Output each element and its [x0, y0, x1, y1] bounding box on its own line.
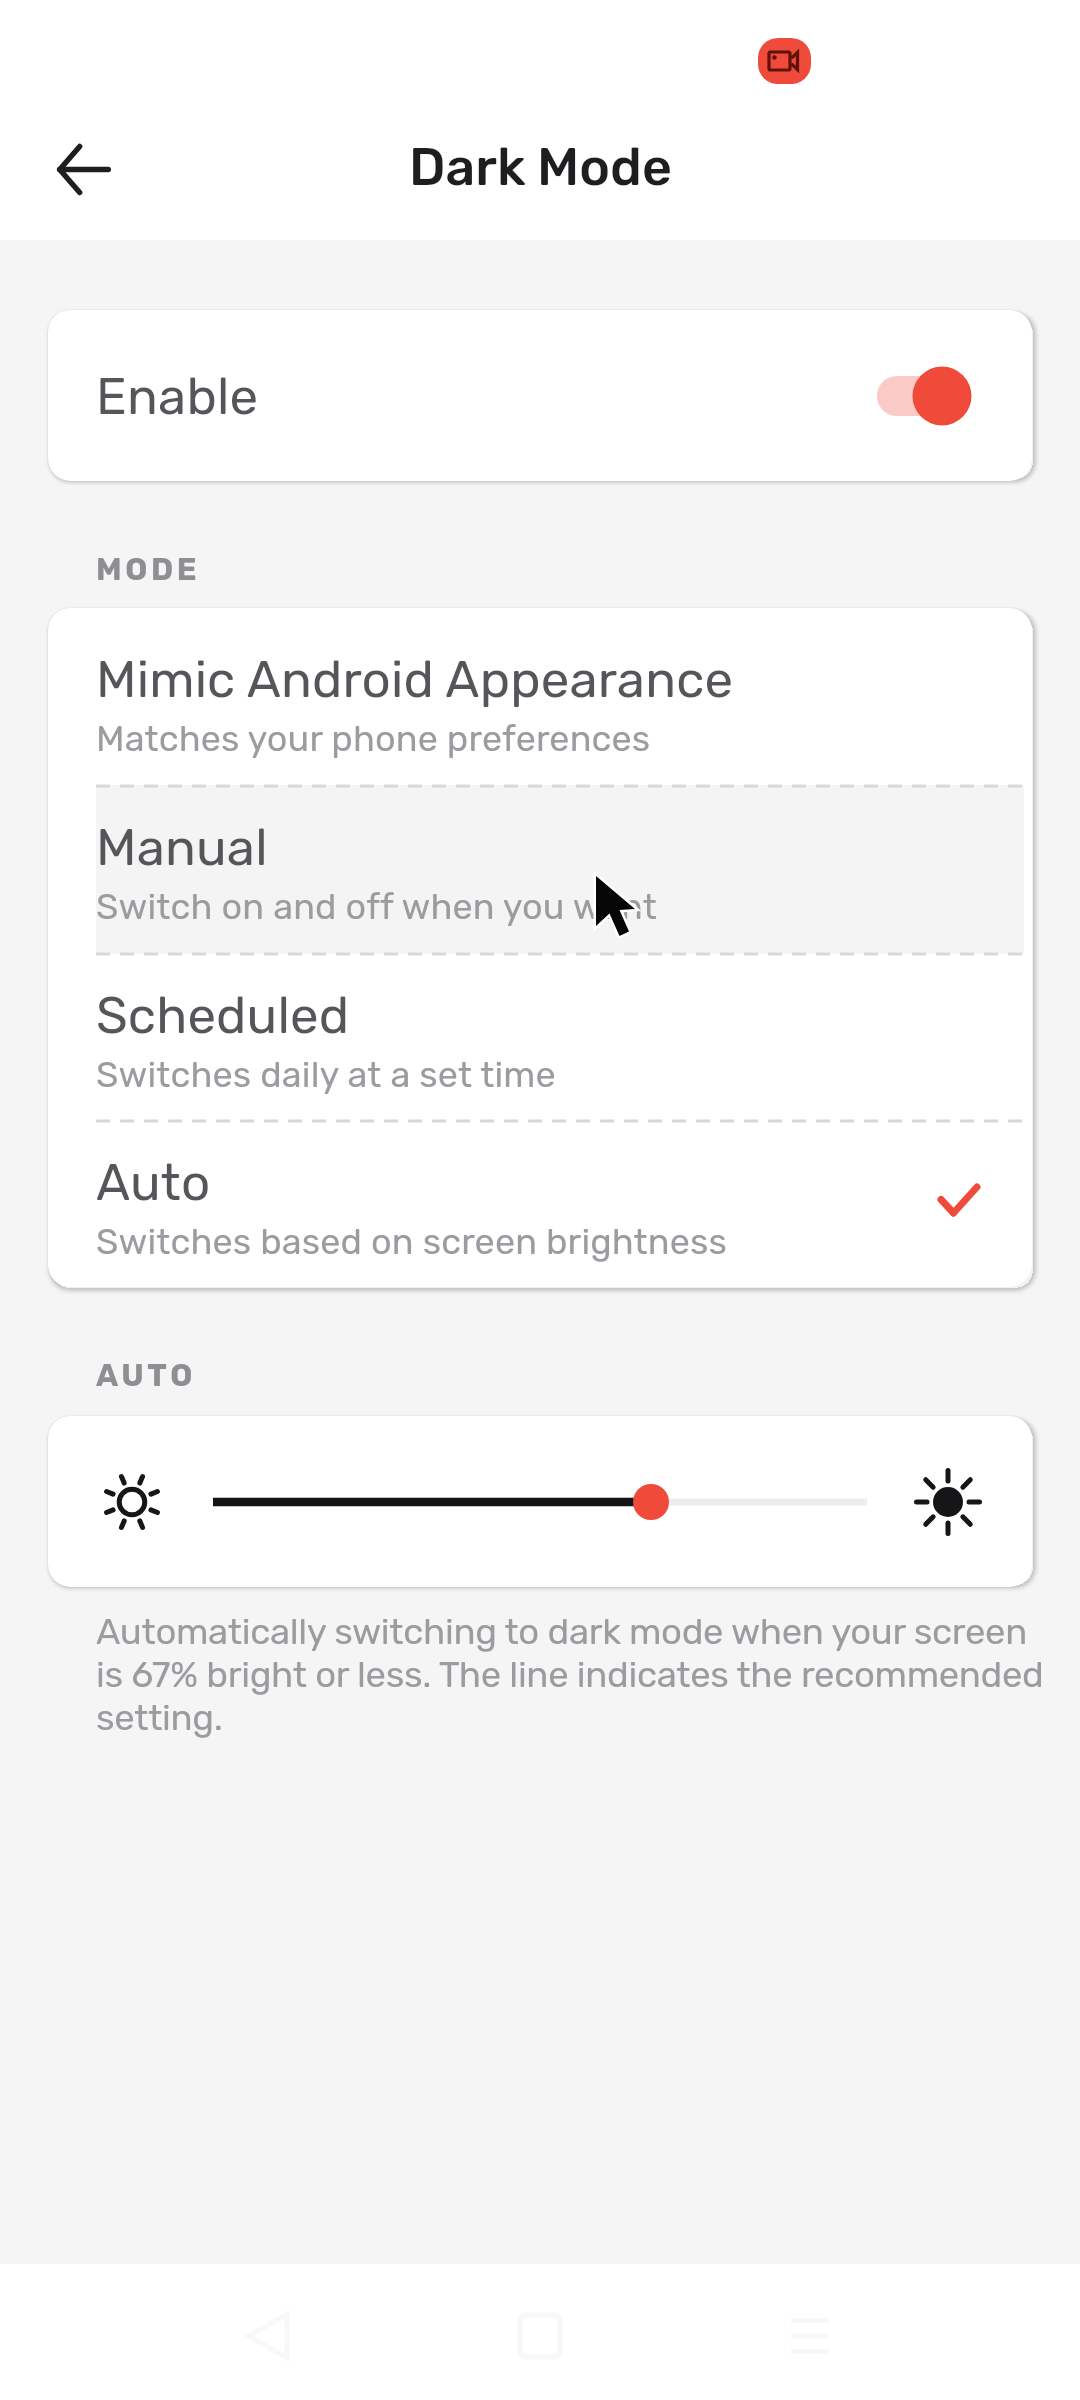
staticText: Switches daily at a set time: [96, 1053, 556, 1096]
staticText: Enable: [96, 366, 259, 426]
staticText: Auto: [96, 1152, 211, 1212]
button[interactable]: Back: [42, 127, 126, 211]
staticText: Automatically switching to dark mode whe…: [96, 1610, 1056, 1739]
button[interactable]: Scheduled: [48, 952, 1032, 1120]
staticText: Dark Mode: [409, 136, 672, 198]
staticText: Switches based on screen brightness: [96, 1220, 727, 1263]
staticText: AUTO: [96, 1357, 196, 1394]
staticText: Scheduled: [96, 985, 350, 1045]
button[interactable]: Auto: [48, 1119, 1032, 1287]
staticText: Switch on and off when you want: [96, 885, 657, 928]
button[interactable]: Mimic Android Appearance: [48, 608, 1032, 784]
staticText: MODE: [96, 551, 201, 588]
staticText: Manual: [96, 817, 268, 877]
button[interactable]: Manual: [48, 784, 1032, 952]
button[interactable]: Enable: [48, 310, 1032, 481]
staticText: Mimic Android Appearance: [96, 649, 734, 709]
staticText: Matches your phone preferences: [96, 717, 651, 760]
